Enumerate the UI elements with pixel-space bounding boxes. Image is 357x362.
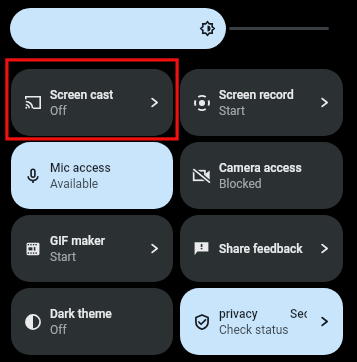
button[interactable]: privacy <box>180 288 343 355</box>
staticText: privacy <box>219 307 258 321</box>
staticText: Check status <box>219 323 289 337</box>
button[interactable]: Brightness <box>10 8 226 49</box>
button[interactable]: Mic access <box>11 142 173 209</box>
staticText: Screen cast <box>50 88 114 102</box>
staticText: Security & privacy <box>290 307 307 321</box>
staticText: Off <box>50 323 67 337</box>
staticText: Start <box>219 104 245 118</box>
button[interactable]: Screen record <box>180 69 343 136</box>
staticText: Camera access <box>219 161 302 175</box>
staticText: Mic access <box>50 161 111 175</box>
button[interactable]: Camera access <box>180 142 343 209</box>
button[interactable]: Share feedback <box>180 215 343 282</box>
staticText: Share feedback <box>219 242 303 256</box>
staticText: Start <box>50 250 76 264</box>
staticText: Dark theme <box>50 307 112 321</box>
button[interactable]: Dark theme <box>11 288 173 355</box>
button[interactable]: Screen cast <box>11 69 173 136</box>
staticText: Off <box>50 104 67 118</box>
staticText: Blocked <box>219 177 262 191</box>
staticText: Screen record <box>219 88 294 102</box>
button[interactable]: GIF maker <box>11 215 173 282</box>
staticText: GIF maker <box>50 234 105 248</box>
staticText: Available <box>50 177 99 191</box>
